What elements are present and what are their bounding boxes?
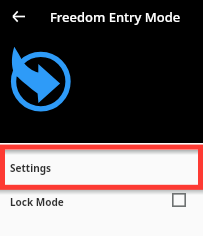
button[interactable]: Settings (0, 150, 203, 189)
button[interactable]: Lock Mode (0, 189, 203, 229)
staticText: Settings (10, 161, 51, 175)
staticText: Freedom Entry Mode (50, 8, 181, 26)
staticText: Lock Mode (10, 195, 64, 209)
button[interactable]: Back (6, 4, 31, 29)
